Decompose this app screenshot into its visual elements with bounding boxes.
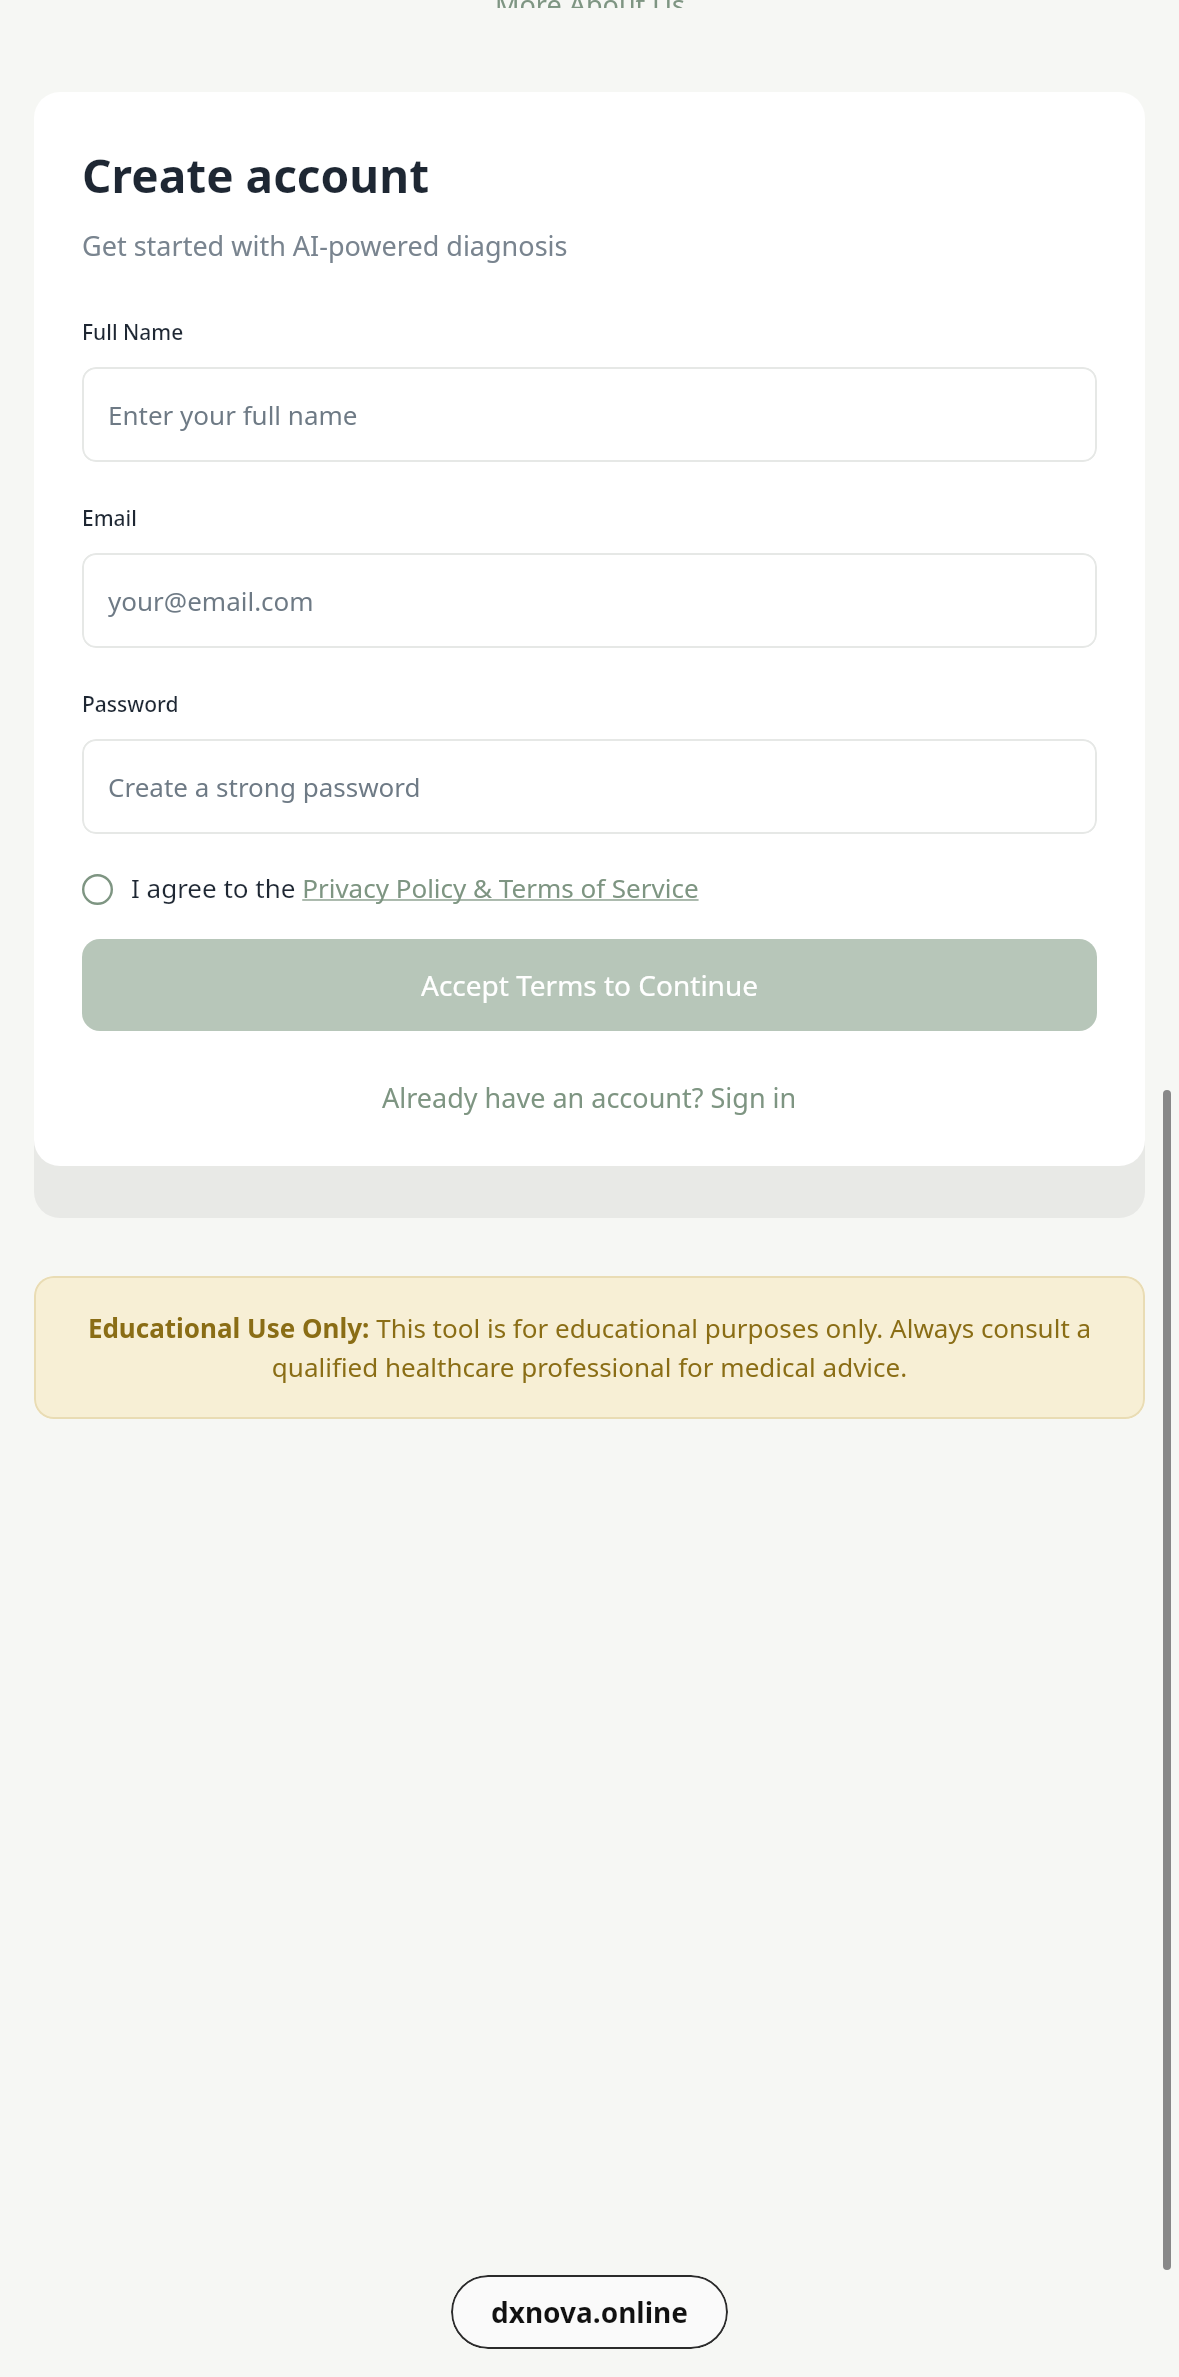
button[interactable]: Create a strong password (82, 739, 1097, 834)
staticText: Email (82, 504, 137, 533)
button[interactable]: Enter your full name (82, 367, 1097, 462)
staticText: Already have an account? Sign in (382, 1079, 797, 1116)
staticText: Educational Use Only: This tool is for e… (82, 1310, 1097, 1385)
staticText: Accept Terms to Continue (421, 966, 759, 1004)
staticText: your@email.com (108, 583, 314, 618)
button[interactable]: Agree to terms checkbox (82, 870, 1097, 905)
button[interactable]: More About Us (491, 0, 689, 8)
staticText: Enter your full name (108, 397, 358, 432)
staticText: Get started with AI-powered diagnosis (82, 227, 568, 264)
staticText: More About Us (495, 0, 685, 8)
staticText: Create a strong password (108, 769, 421, 804)
staticText: I agree to the Privacy Policy & Terms of… (131, 870, 699, 905)
other: Agree to terms checkbox (82, 874, 113, 905)
staticText: dxnova.online (491, 2293, 688, 2331)
staticText: Create account (82, 144, 430, 207)
button[interactable]: Already have an account? Sign in (374, 1071, 805, 1124)
staticText: Password (82, 690, 179, 719)
button[interactable]: Accept Terms to Continue (82, 939, 1097, 1031)
button[interactable]: your@email.com (82, 553, 1097, 648)
staticText: Full Name (82, 318, 184, 347)
button[interactable]: dxnova.online (451, 2275, 728, 2349)
